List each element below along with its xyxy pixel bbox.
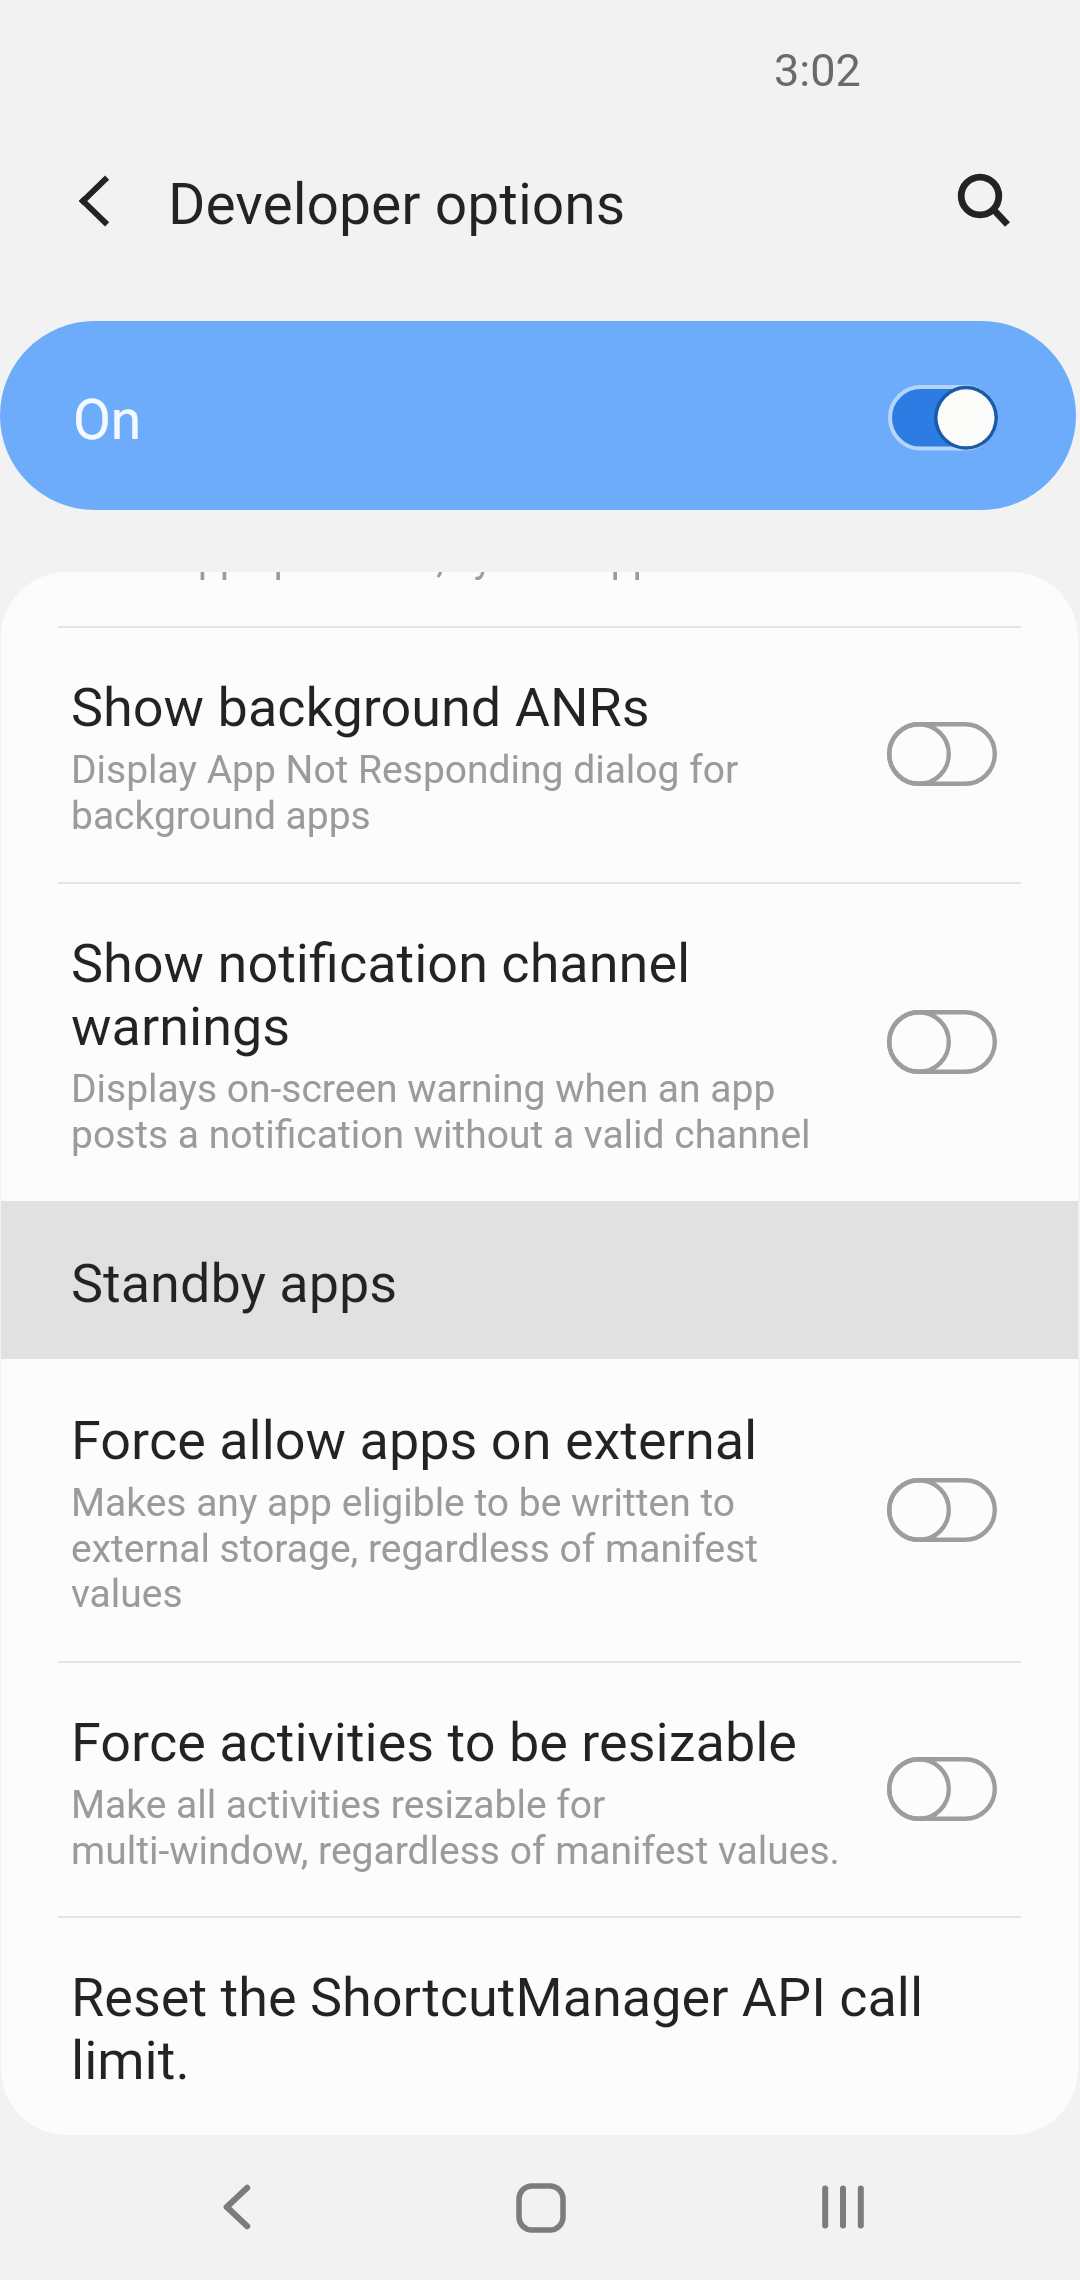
button[interactable]: Toggle xyxy=(887,1477,999,1543)
staticText: Displays on-screen warning when an app p… xyxy=(71,1066,891,1157)
staticText: Display App Not Responding dialog for ba… xyxy=(71,747,891,838)
button[interactable]: Force allow apps on external xyxy=(1,1359,1078,1661)
staticText: Force activities to be resizable xyxy=(71,1711,891,1774)
button[interactable]: Show background ANRs xyxy=(1,626,1078,882)
staticText: Developer options xyxy=(168,171,626,238)
button[interactable]: Standby apps xyxy=(1,1201,1078,1359)
staticText: Show app operations, system app services xyxy=(71,572,809,582)
staticText: Make all activities resizable for multi-… xyxy=(71,1782,891,1873)
button[interactable]: Navigate up xyxy=(35,142,153,260)
button[interactable]: Toggle xyxy=(887,721,999,787)
staticText: Makes any app eligible to be written to … xyxy=(71,1480,891,1616)
button[interactable]: Show notification channel warnings xyxy=(1,882,1078,1201)
staticText: 3:02 xyxy=(774,44,861,97)
button[interactable]: On xyxy=(0,321,1076,510)
button[interactable]: Recent apps xyxy=(784,2148,902,2266)
button[interactable]: Back xyxy=(178,2148,296,2266)
staticText: On xyxy=(73,388,142,452)
button[interactable]: Reset the ShortcutManager API call limit… xyxy=(1,1916,1078,2135)
staticText: Show notification channel warnings xyxy=(71,932,891,1058)
staticText: Standby apps xyxy=(71,1252,398,1315)
staticText: Show background ANRs xyxy=(71,676,891,739)
button[interactable]: Toggle xyxy=(887,1009,999,1075)
staticText: Force allow apps on external xyxy=(71,1409,891,1472)
button[interactable]: Home xyxy=(482,2149,600,2267)
staticText: Reset the ShortcutManager API call limit… xyxy=(71,1966,924,2092)
button[interactable]: Search xyxy=(925,141,1043,259)
button[interactable]: Toggle xyxy=(887,1756,999,1822)
button[interactable]: Force activities to be resizable xyxy=(1,1661,1078,1916)
